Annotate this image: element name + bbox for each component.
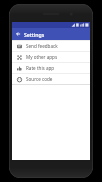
staticText: Source code (26, 76, 53, 82)
staticText: Send feedback (26, 43, 58, 49)
button[interactable]: Source code (12, 74, 90, 84)
button[interactable]: Back (12, 28, 24, 40)
staticText: Rate this app (26, 65, 55, 71)
staticText: Settings (24, 31, 45, 38)
staticText: My other apps (26, 54, 58, 60)
button[interactable]: My other apps (12, 52, 90, 62)
button[interactable]: Rate this app (12, 63, 90, 73)
button[interactable]: Send feedback (12, 41, 90, 51)
